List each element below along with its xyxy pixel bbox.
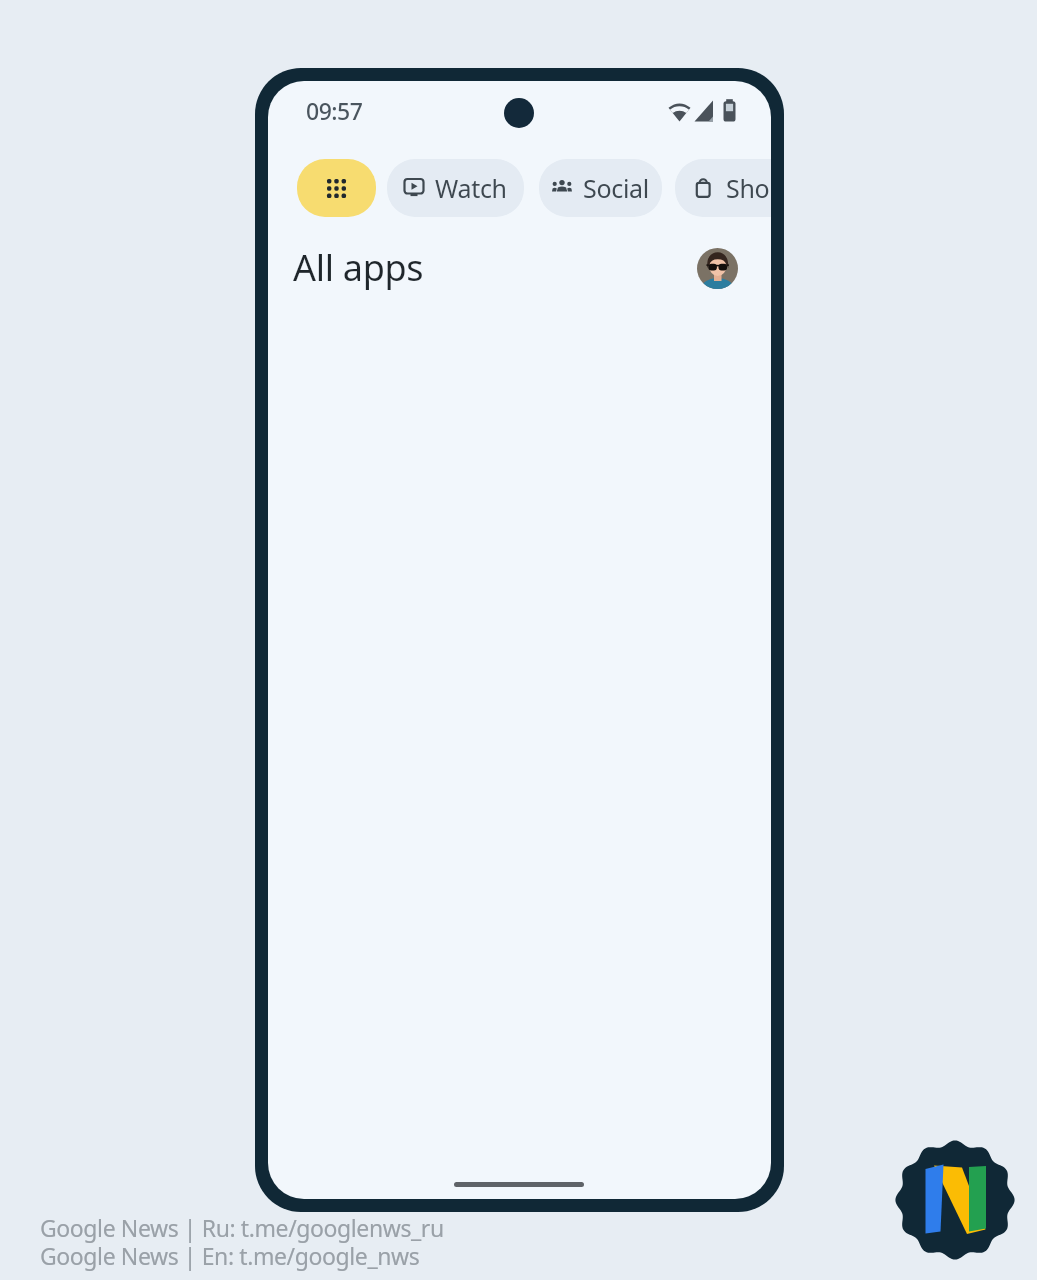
staticText: Shop xyxy=(726,171,771,205)
staticText: All apps xyxy=(293,243,424,292)
staticText: Watch xyxy=(435,171,507,205)
button[interactable]: Shop xyxy=(675,159,771,217)
staticText: 09:57 xyxy=(306,95,363,126)
staticText: Social xyxy=(583,171,649,205)
staticText: Google News | En: t.me/google_nws xyxy=(40,1240,420,1271)
button[interactable]: Watch xyxy=(387,159,524,217)
button[interactable] xyxy=(697,248,738,289)
staticText: Google News | Ru: t.me/googlenws_ru xyxy=(40,1212,444,1243)
button[interactable]: Social xyxy=(539,159,662,217)
button[interactable] xyxy=(297,159,376,217)
